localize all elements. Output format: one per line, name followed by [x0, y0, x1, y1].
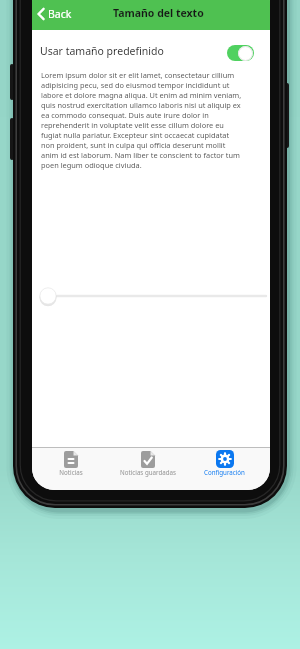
- staticText: Lorem ipsum dolor sit er elit lamet, con…: [41, 70, 242, 170]
- staticText: Tamaño del texto: [113, 6, 204, 20]
- button[interactable]: Noticias guardadas: [109, 448, 186, 490]
- staticText: Noticias guardadas: [120, 468, 176, 476]
- button[interactable]: Configuración: [186, 448, 263, 490]
- staticText: Noticias: [59, 468, 83, 476]
- button[interactable]: [227, 45, 254, 61]
- staticText: Back: [48, 7, 72, 21]
- button[interactable]: Noticias: [32, 448, 109, 490]
- button[interactable]: Usar tamaño predefinido: [40, 34, 254, 68]
- button[interactable]: Back: [37, 7, 72, 21]
- staticText: Usar tamaño predefinido: [40, 44, 227, 58]
- staticText: Configuración: [204, 468, 245, 476]
